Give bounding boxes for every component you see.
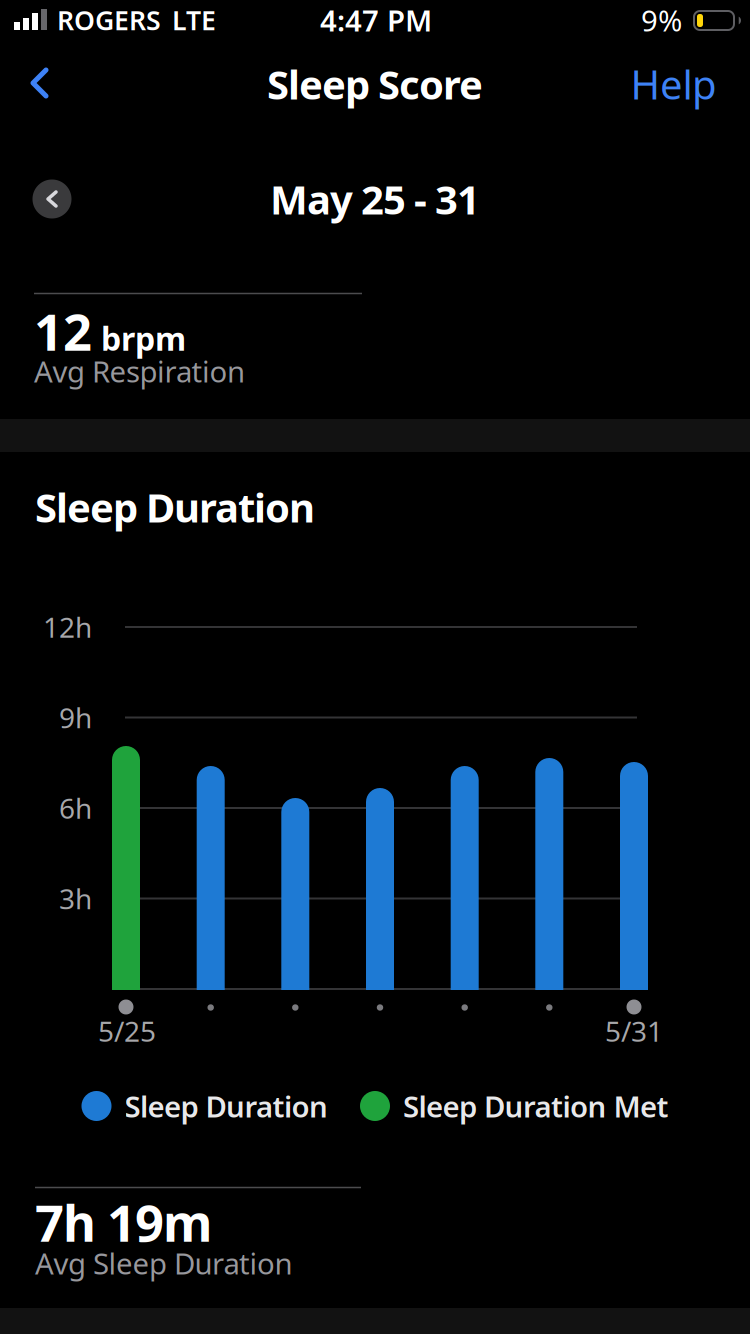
staticText: Avg Sleep Duration bbox=[35, 1243, 292, 1282]
staticText: 12h bbox=[43, 608, 92, 646]
staticText: May 25 - 31 bbox=[270, 172, 480, 225]
staticText: 4:47 PM bbox=[320, 0, 432, 39]
button[interactable] bbox=[32, 179, 71, 218]
staticText: 7h 19m bbox=[35, 1188, 212, 1256]
staticText: 5/25 bbox=[98, 1012, 156, 1050]
staticText: Avg Respiration bbox=[34, 351, 245, 390]
staticText: Sleep Score bbox=[267, 57, 483, 110]
staticText: 3h bbox=[59, 880, 92, 917]
staticText: Help bbox=[630, 57, 717, 110]
button[interactable] bbox=[30, 67, 50, 99]
staticText: 9h bbox=[59, 699, 92, 736]
staticText: 12 bbox=[34, 297, 92, 365]
staticText: brpm bbox=[101, 317, 186, 359]
staticText: ROGERS bbox=[57, 2, 161, 38]
staticText: 6h bbox=[59, 789, 92, 827]
staticText: Sleep Duration Met bbox=[403, 1086, 668, 1125]
staticText: Sleep Duration bbox=[35, 480, 315, 533]
staticText: LTE bbox=[172, 2, 216, 38]
staticText: 5/31 bbox=[605, 1012, 663, 1050]
button[interactable]: Help bbox=[17, 57, 717, 110]
staticText: Sleep Duration bbox=[124, 1086, 328, 1125]
staticText: 9% bbox=[641, 0, 682, 39]
